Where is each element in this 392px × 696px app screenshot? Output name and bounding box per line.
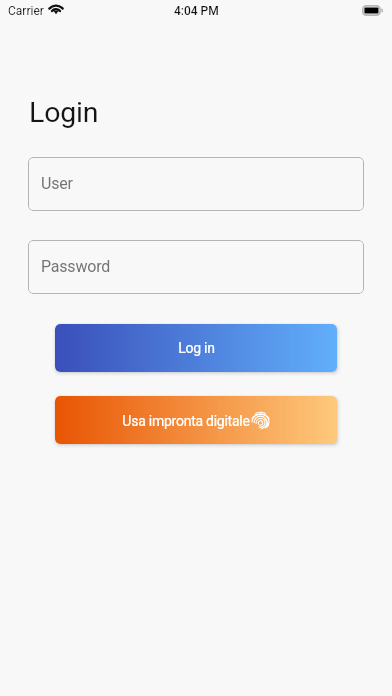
button[interactable]: Usa impronta digitale	[55, 396, 337, 444]
button[interactable]: Log in	[55, 324, 337, 372]
staticText: Usa impronta digitale	[122, 413, 250, 429]
other: Battery full	[362, 5, 383, 16]
staticText: Log in	[178, 340, 215, 356]
button[interactable]: Password	[28, 240, 364, 294]
staticText: Carrier	[8, 4, 44, 18]
other: Wi-Fi signal	[48, 4, 64, 14]
button[interactable]: User	[28, 157, 364, 211]
staticText: Password	[41, 257, 111, 276]
staticText: User	[41, 174, 73, 193]
staticText: Login	[29, 96, 99, 129]
staticText: 4:04 PM	[174, 4, 219, 18]
